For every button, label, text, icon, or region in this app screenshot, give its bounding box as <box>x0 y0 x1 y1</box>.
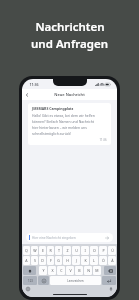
button[interactable]: G <box>55 256 62 265</box>
button[interactable]: Sprache wechseln <box>25 286 31 292</box>
staticText: schnellstmöglich zurück! <box>32 131 72 136</box>
button[interactable]: Z <box>63 246 71 255</box>
button[interactable]: A <box>23 256 30 265</box>
button[interactable]: B <box>75 266 83 275</box>
staticText: W <box>33 248 37 253</box>
button[interactable]: Ö <box>99 256 107 265</box>
staticText: B <box>78 268 81 273</box>
staticText: N <box>87 268 90 273</box>
button[interactable]: Zurück <box>22 90 31 99</box>
button[interactable]: C <box>57 266 65 275</box>
button[interactable]: L <box>90 256 98 265</box>
button[interactable]: Emoji <box>38 276 49 285</box>
staticText: D <box>41 258 44 263</box>
button[interactable]: K <box>81 256 89 265</box>
staticText: Hier eine Nachricht eingeben <box>32 236 76 240</box>
staticText: G <box>57 258 60 263</box>
button[interactable]: M <box>93 266 101 275</box>
button[interactable]: V <box>66 266 74 275</box>
staticText: T <box>58 248 60 253</box>
button[interactable]: J <box>72 256 80 265</box>
button[interactable]: H <box>63 256 71 265</box>
staticText: Q <box>25 248 28 253</box>
button[interactable]: Diktieren <box>108 286 114 292</box>
button[interactable]: T <box>55 246 62 255</box>
staticText: 123 <box>28 279 33 283</box>
staticText: L <box>93 258 95 263</box>
staticText: F <box>50 258 52 263</box>
staticText: Ä <box>111 258 114 263</box>
staticText: K <box>84 258 87 263</box>
staticText: Z <box>66 248 69 253</box>
staticText: S <box>34 258 36 263</box>
staticText: V <box>69 268 72 273</box>
staticText: X <box>51 268 54 273</box>
staticText: Neue Nachricht <box>54 92 85 97</box>
staticText: 11:36 <box>99 138 107 142</box>
staticText: Ü <box>111 248 114 253</box>
staticText: C <box>60 268 63 273</box>
staticText: Nachrichten <box>35 19 105 35</box>
staticText: O <box>93 248 96 253</box>
staticText: JMSMARS Campingplatz <box>32 106 74 111</box>
button[interactable]: Senden <box>104 235 110 241</box>
staticText: hier hinterlassen – wir melden uns <box>32 125 87 130</box>
staticText: können? Einfach Namen und Nachricht <box>32 119 95 124</box>
staticText: und Anfragen <box>31 36 108 52</box>
button[interactable]: X <box>48 266 56 275</box>
staticText: H <box>66 258 69 263</box>
button[interactable]: N <box>84 266 92 275</box>
button[interactable]: W <box>31 246 38 255</box>
button[interactable]: JMSMARS Campingplatz <box>28 103 111 145</box>
staticText: Leerzeichen <box>67 279 84 283</box>
button[interactable]: 123 <box>23 276 37 285</box>
button[interactable]: D <box>39 256 46 265</box>
staticText: Y <box>42 268 45 273</box>
staticText: U <box>75 248 78 253</box>
staticText: P <box>102 248 105 253</box>
button[interactable]: Ü <box>108 246 116 255</box>
button[interactable]: I <box>81 246 89 255</box>
staticText: M <box>95 268 99 273</box>
staticText: Hallo! Gibt es etwas, bei dem wir helfen <box>32 113 95 118</box>
button[interactable]: Hier eine Nachricht eingeben <box>26 233 113 242</box>
button[interactable]: Y <box>39 266 47 275</box>
button[interactable]: P <box>99 246 107 255</box>
staticText: 11:36 <box>29 82 39 87</box>
button[interactable]: F <box>47 256 54 265</box>
button[interactable]: Q <box>23 246 30 255</box>
button[interactable]: Eingabe <box>102 276 116 285</box>
button[interactable]: Ä <box>108 256 116 265</box>
button[interactable]: Löschen <box>104 266 116 275</box>
button[interactable]: E <box>39 246 46 255</box>
staticText: R <box>49 248 52 253</box>
button[interactable]: S <box>31 256 38 265</box>
button[interactable]: Leerzeichen <box>50 276 101 285</box>
staticText: A <box>25 258 28 263</box>
staticText: J <box>76 258 77 263</box>
button[interactable]: Umschalt <box>23 266 36 275</box>
staticText: Ö <box>102 258 105 263</box>
button[interactable]: U <box>72 246 80 255</box>
staticText: I <box>84 248 86 253</box>
staticText: E <box>42 248 44 253</box>
button[interactable]: R <box>47 246 54 255</box>
button[interactable]: O <box>90 246 98 255</box>
